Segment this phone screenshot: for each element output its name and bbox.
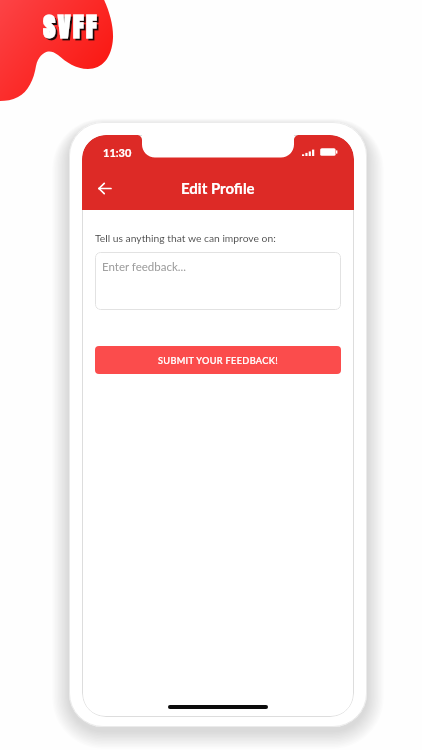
staticText: Tell us anything that we can improve on: <box>95 232 276 244</box>
staticText: SVFF <box>45 11 102 49</box>
staticText: Edit Profile <box>181 179 255 197</box>
staticText: 11:30 <box>103 146 132 159</box>
staticText: Enter feedback... <box>102 260 186 274</box>
button[interactable]: SUBMIT YOUR FEEDBACK! <box>95 346 341 374</box>
button[interactable]: Back <box>87 171 121 205</box>
staticText: SVFF <box>43 9 100 47</box>
button[interactable]: Enter feedback... <box>95 252 341 310</box>
staticText: SUBMIT YOUR FEEDBACK! <box>158 355 278 366</box>
